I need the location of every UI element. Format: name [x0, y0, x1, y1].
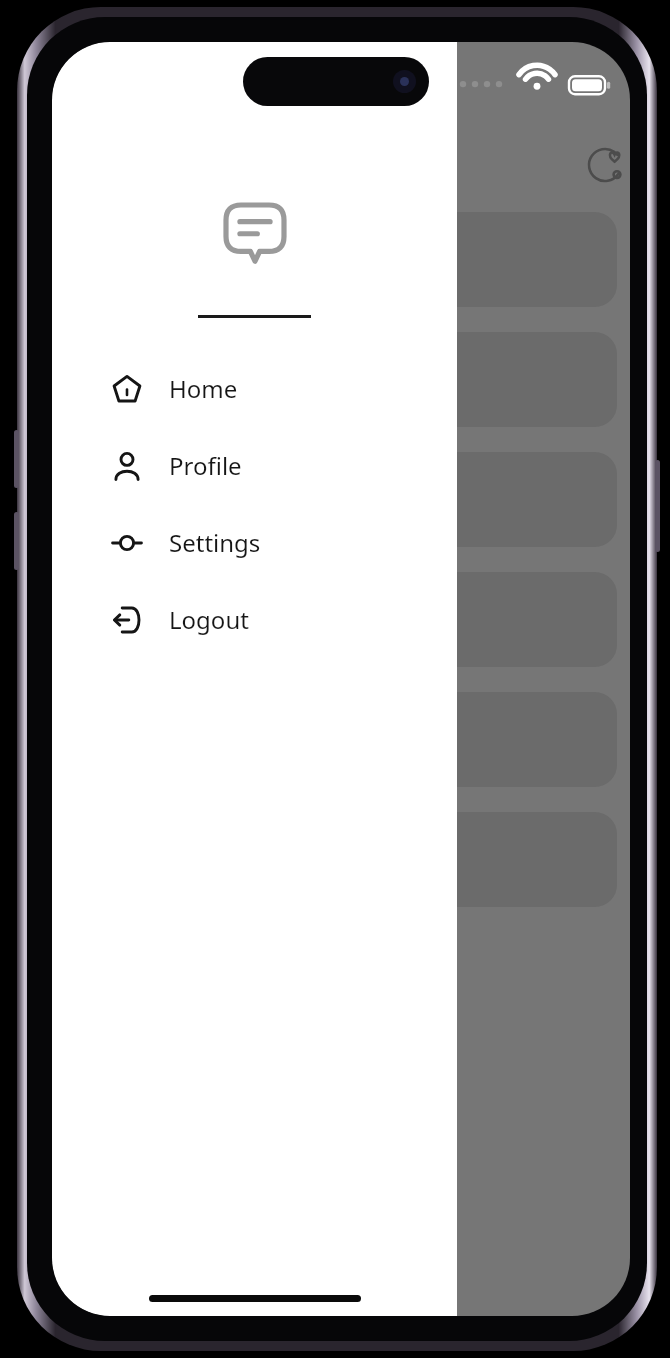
button[interactable]: Profile	[577, 137, 630, 193]
button[interactable]: Profile	[52, 427, 457, 504]
button[interactable]: Logout	[52, 581, 457, 658]
button[interactable]	[80, 452, 617, 547]
button[interactable]	[80, 812, 617, 907]
button[interactable]	[80, 212, 617, 307]
button[interactable]: Settings	[52, 504, 457, 581]
staticText: Logout	[169, 603, 249, 636]
button[interactable]	[80, 692, 617, 787]
button[interactable]: App logo	[218, 197, 292, 271]
button[interactable]	[80, 572, 617, 667]
staticText: Home	[169, 372, 238, 405]
staticText: Profile	[169, 449, 242, 482]
staticText: Settings	[169, 526, 261, 559]
button[interactable]: Home	[52, 350, 457, 427]
button[interactable]	[80, 332, 617, 427]
